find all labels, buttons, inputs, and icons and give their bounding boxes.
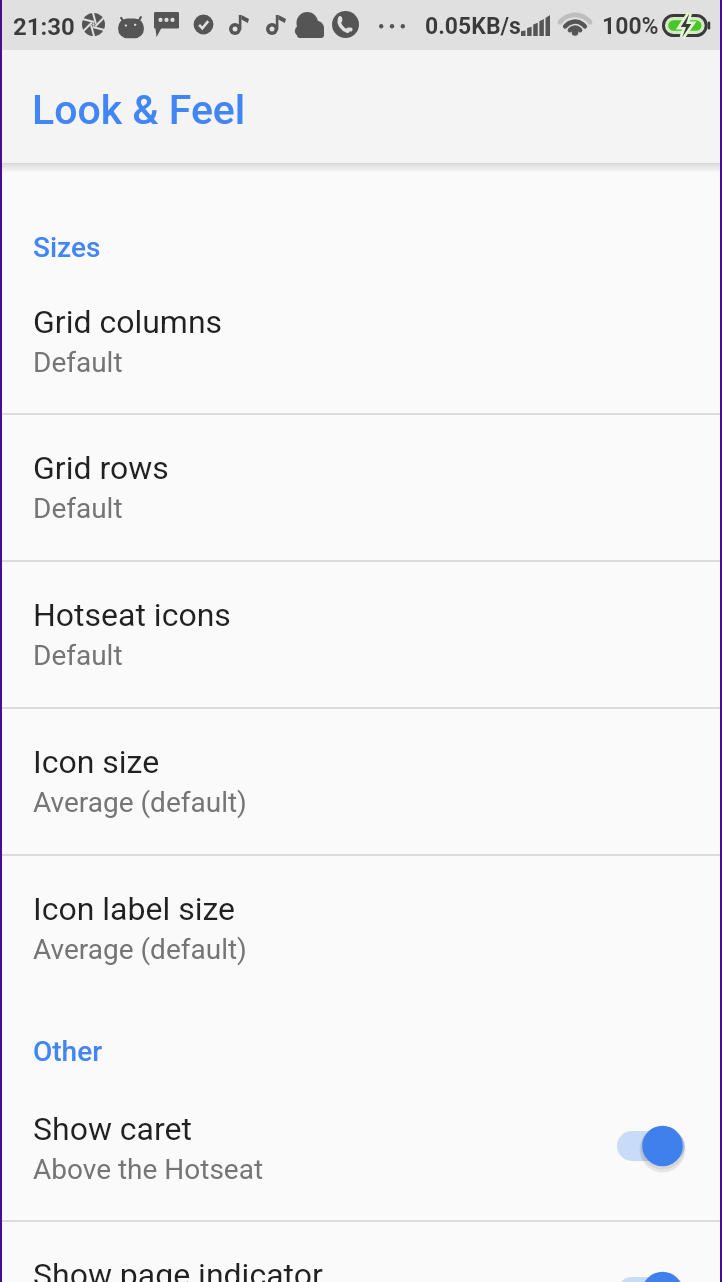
- staticText: Grid columns: [33, 303, 223, 341]
- staticText: Grid rows: [33, 449, 169, 487]
- staticText: 0.05KB/s: [425, 13, 521, 40]
- button[interactable]: Toggle setting: [617, 1268, 689, 1282]
- staticText: Above the Hotseat: [33, 1153, 264, 1186]
- staticText: Average (default): [33, 933, 247, 966]
- staticText: Average (default): [33, 786, 247, 819]
- staticText: Default: [33, 492, 123, 525]
- button[interactable]: Grid rows: [0, 415, 722, 560]
- staticText: Show caret: [33, 1110, 192, 1148]
- button[interactable]: Show caret: [0, 1068, 722, 1220]
- button[interactable]: Hotseat icons: [0, 562, 722, 707]
- staticText: Hotseat icons: [33, 596, 231, 634]
- button[interactable]: Icon label size: [0, 856, 722, 1035]
- staticText: Icon label size: [33, 890, 236, 928]
- staticText: Look & Feel: [32, 86, 246, 134]
- staticText: Sizes: [33, 231, 722, 264]
- staticText: Show page indicator: [33, 1256, 323, 1282]
- button[interactable]: Icon size: [0, 709, 722, 854]
- button[interactable]: Grid columns: [0, 264, 722, 413]
- staticText: Default: [33, 346, 123, 379]
- staticText: Other: [33, 1035, 722, 1068]
- staticText: Icon size: [33, 743, 160, 781]
- staticText: 100%: [602, 13, 659, 40]
- button[interactable]: Show page indicator: [0, 1222, 722, 1282]
- button[interactable]: Toggle setting: [617, 1122, 689, 1170]
- staticText: 21:30: [13, 13, 75, 41]
- staticText: Default: [33, 639, 123, 672]
